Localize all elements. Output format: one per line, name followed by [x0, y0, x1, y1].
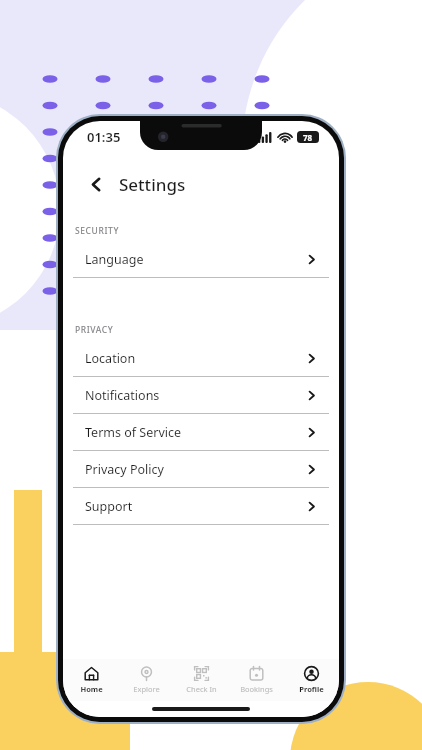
- staticText: Terms of Service: [85, 424, 306, 441]
- button[interactable]: Support: [63, 488, 339, 525]
- button[interactable]: Bookings: [229, 659, 284, 701]
- staticText: Support: [85, 498, 306, 515]
- button[interactable]: Privacy Policy: [63, 451, 339, 488]
- button[interactable]: Location: [63, 340, 339, 377]
- staticText: Profile: [299, 684, 324, 694]
- staticText: SECURITY: [75, 225, 120, 237]
- staticText: Location: [85, 350, 306, 367]
- button[interactable]: Language: [63, 241, 339, 278]
- button[interactable]: Notifications: [63, 377, 339, 414]
- staticText: Settings: [119, 173, 186, 196]
- staticText: Bookings: [240, 684, 273, 694]
- staticText: Language: [85, 251, 306, 268]
- staticText: 78: [303, 132, 313, 143]
- staticText: Check In: [186, 684, 217, 694]
- button[interactable]: Back: [81, 169, 111, 199]
- staticText: Privacy Policy: [85, 461, 306, 478]
- staticText: 01:35: [87, 128, 121, 146]
- button[interactable]: Terms of Service: [63, 414, 339, 451]
- button[interactable]: Explore: [119, 659, 174, 701]
- staticText: Notifications: [85, 387, 306, 404]
- button[interactable]: Profile: [284, 659, 339, 701]
- staticText: PRIVACY: [75, 324, 114, 336]
- button[interactable]: Home: [63, 659, 119, 701]
- staticText: Home: [80, 684, 103, 694]
- staticText: Explore: [133, 684, 160, 694]
- button[interactable]: Check In: [174, 659, 229, 701]
